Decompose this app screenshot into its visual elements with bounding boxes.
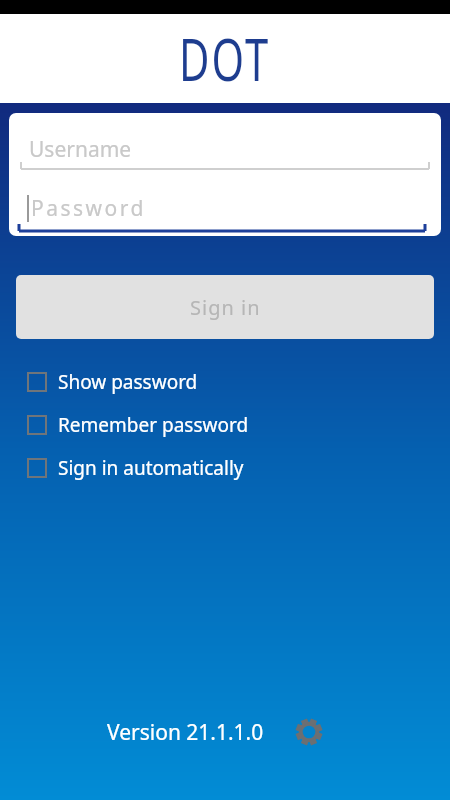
staticText: DOT (179, 19, 271, 98)
staticText: Remember password (58, 412, 249, 438)
button[interactable] (294, 717, 324, 747)
button[interactable]: Username (9, 113, 441, 236)
staticText: Version 21.1.1.0 (107, 718, 264, 747)
button[interactable]: Remember password (0, 405, 450, 445)
staticText: Sign in automatically (58, 455, 244, 481)
button[interactable]: Show password (0, 362, 450, 402)
staticText: Sign in (190, 294, 261, 321)
button[interactable]: Sign in automatically (0, 448, 450, 488)
staticText: Password (31, 194, 146, 223)
button[interactable]: Sign in (16, 275, 434, 339)
staticText: Username (29, 135, 132, 164)
staticText: Show password (58, 369, 198, 395)
